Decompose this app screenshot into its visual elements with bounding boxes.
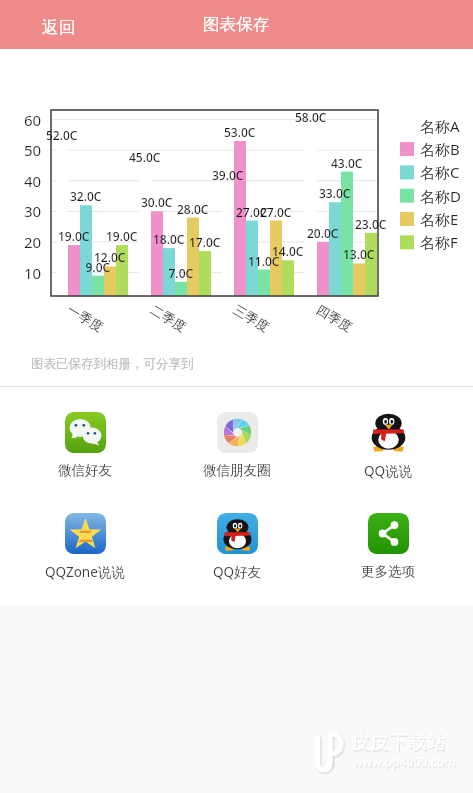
staticText: 图表保存 [203, 14, 270, 35]
staticText: 微信朋友圈 [203, 462, 271, 479]
button[interactable]: 微信好友 [37, 408, 133, 483]
button[interactable]: QQ好友 [189, 509, 285, 585]
staticText: 微信好友 [58, 462, 112, 479]
staticText: QQ说说 [364, 462, 413, 480]
button[interactable]: QQ说说 [340, 408, 436, 484]
staticText: 图表已保存到相册，可分享到 [31, 356, 194, 372]
button[interactable]: QQZone说说 [37, 509, 133, 585]
button[interactable]: 返回 [32, 10, 86, 45]
staticText: 更多选项 [361, 563, 415, 580]
button[interactable]: 更多选项 [340, 509, 436, 584]
button[interactable]: 微信朋友圈 [189, 408, 285, 483]
staticText: QQ好友 [213, 563, 262, 581]
staticText: QQZone说说 [45, 563, 125, 581]
staticText: 返回 [42, 17, 76, 38]
